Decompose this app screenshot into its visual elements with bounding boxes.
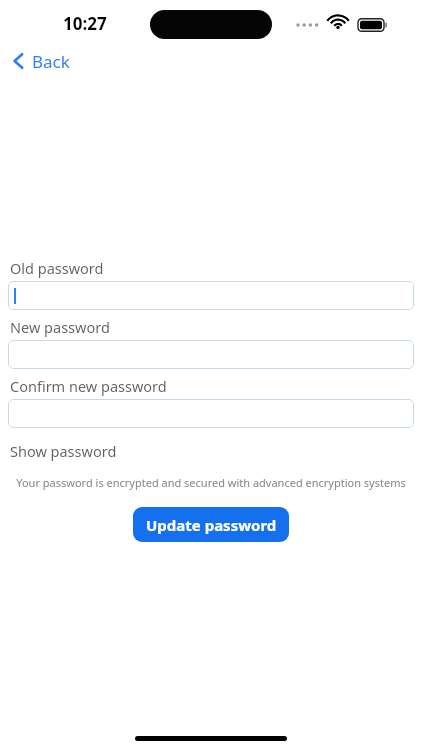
staticText: Old password [10, 258, 104, 278]
staticText: New password [10, 317, 110, 337]
button[interactable]: Back [6, 46, 76, 76]
button[interactable]: Update password [133, 507, 289, 542]
staticText: Confirm new password [10, 376, 167, 396]
button[interactable]: Show password [4, 438, 123, 464]
staticText: 10:27 [63, 12, 107, 35]
staticText: Your password is encrypted and secured w… [16, 475, 406, 490]
staticText: Update password [146, 515, 277, 535]
staticText: Back [32, 50, 70, 73]
button[interactable] [8, 281, 414, 310]
staticText: Show password [10, 441, 117, 461]
button[interactable] [8, 340, 414, 369]
button[interactable] [8, 399, 414, 428]
